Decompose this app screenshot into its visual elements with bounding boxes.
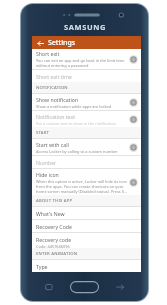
button[interactable]: Recovery Code (32, 220, 141, 232)
button[interactable]: Toggle (128, 177, 139, 188)
button[interactable]: Type (32, 260, 141, 272)
staticText: Recovery code (36, 236, 72, 243)
button[interactable]: Notification text (32, 111, 141, 127)
staticText: Short exit time (36, 73, 72, 80)
staticText: You can exit an app and go back in the l… (36, 58, 128, 68)
button[interactable]: Recovery code (32, 233, 141, 248)
staticText: Start with call (36, 141, 69, 148)
button[interactable]: Number (32, 156, 141, 168)
staticText: Show notification (36, 96, 79, 103)
staticText: NOTIFICATION (36, 85, 68, 91)
staticText: Number (36, 159, 57, 166)
staticText: ENTER ANIMATION (36, 251, 78, 257)
button[interactable]: Short exit (32, 49, 141, 69)
button[interactable]: What's New (32, 207, 141, 219)
button[interactable]: Toggle (128, 97, 139, 108)
staticText: Hide icon (36, 171, 59, 178)
button[interactable]: Toggle (128, 114, 139, 125)
button[interactable]: Toggle (128, 54, 139, 65)
button[interactable]: Hide icon (32, 169, 141, 195)
staticText: ABOUT THIS APP (36, 198, 73, 204)
button[interactable]: Toggle (128, 142, 139, 153)
staticText: Set a custom text to show in the notific… (36, 121, 117, 126)
staticText: Show a notification while apps are locke… (36, 104, 112, 109)
staticText: Short exit (36, 50, 60, 57)
staticText: Recovery Code (36, 223, 72, 230)
staticText: Settings (48, 38, 76, 48)
staticText: Type (36, 263, 48, 270)
staticText: Code: 4457646096 (36, 244, 70, 248)
button[interactable]: Navigate up (35, 38, 45, 48)
staticText: When this option is active, Locker will … (36, 179, 128, 194)
button[interactable]: Short exit time (32, 70, 141, 82)
button[interactable]: Show notification (32, 94, 141, 110)
staticText: SAMSUNG (64, 22, 106, 32)
staticText: Access Locker by calling to a custom num… (36, 149, 118, 154)
staticText: What's New (36, 210, 65, 217)
staticText: Notification text (36, 113, 76, 120)
staticText: START (36, 130, 50, 136)
button[interactable]: Start with call (32, 139, 141, 155)
